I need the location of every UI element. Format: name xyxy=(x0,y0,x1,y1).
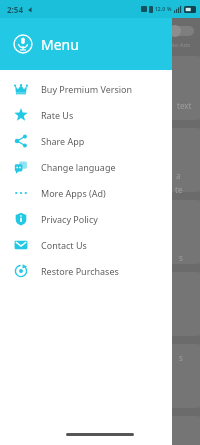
staticText: No Ads xyxy=(170,41,191,49)
staticText: Share App xyxy=(41,135,85,147)
staticText: te xyxy=(175,184,183,195)
staticText: Restore Purchases xyxy=(41,265,119,277)
button[interactable]: Restore Purchases xyxy=(0,258,172,284)
button[interactable]: More Apps (Ad) xyxy=(0,180,172,206)
staticText: Privacy Policy xyxy=(41,213,98,225)
button[interactable]: Contact Us xyxy=(0,232,172,258)
staticText: Menu xyxy=(41,35,79,54)
staticText: Contact Us xyxy=(41,239,87,251)
other: App logo xyxy=(13,34,33,54)
button[interactable]: Privacy Policy xyxy=(0,206,172,232)
staticText: 12.0 xyxy=(155,6,165,13)
staticText: More Apps (Ad) xyxy=(41,187,106,199)
button[interactable]: Change language xyxy=(0,154,172,180)
button[interactable]: Rate Us xyxy=(0,102,172,128)
staticText: a xyxy=(176,170,181,181)
staticText: 2:54 xyxy=(7,4,23,15)
staticText: Change language xyxy=(41,161,116,173)
staticText: text xyxy=(177,100,192,111)
button[interactable]: Buy Premium Version xyxy=(0,76,172,102)
staticText: s xyxy=(179,352,183,363)
button[interactable]: Share App xyxy=(0,128,172,154)
staticText: % xyxy=(167,6,172,13)
staticText: Rate Us xyxy=(41,109,74,121)
staticText: s xyxy=(179,252,183,263)
staticText: Buy Premium Version xyxy=(41,83,133,95)
